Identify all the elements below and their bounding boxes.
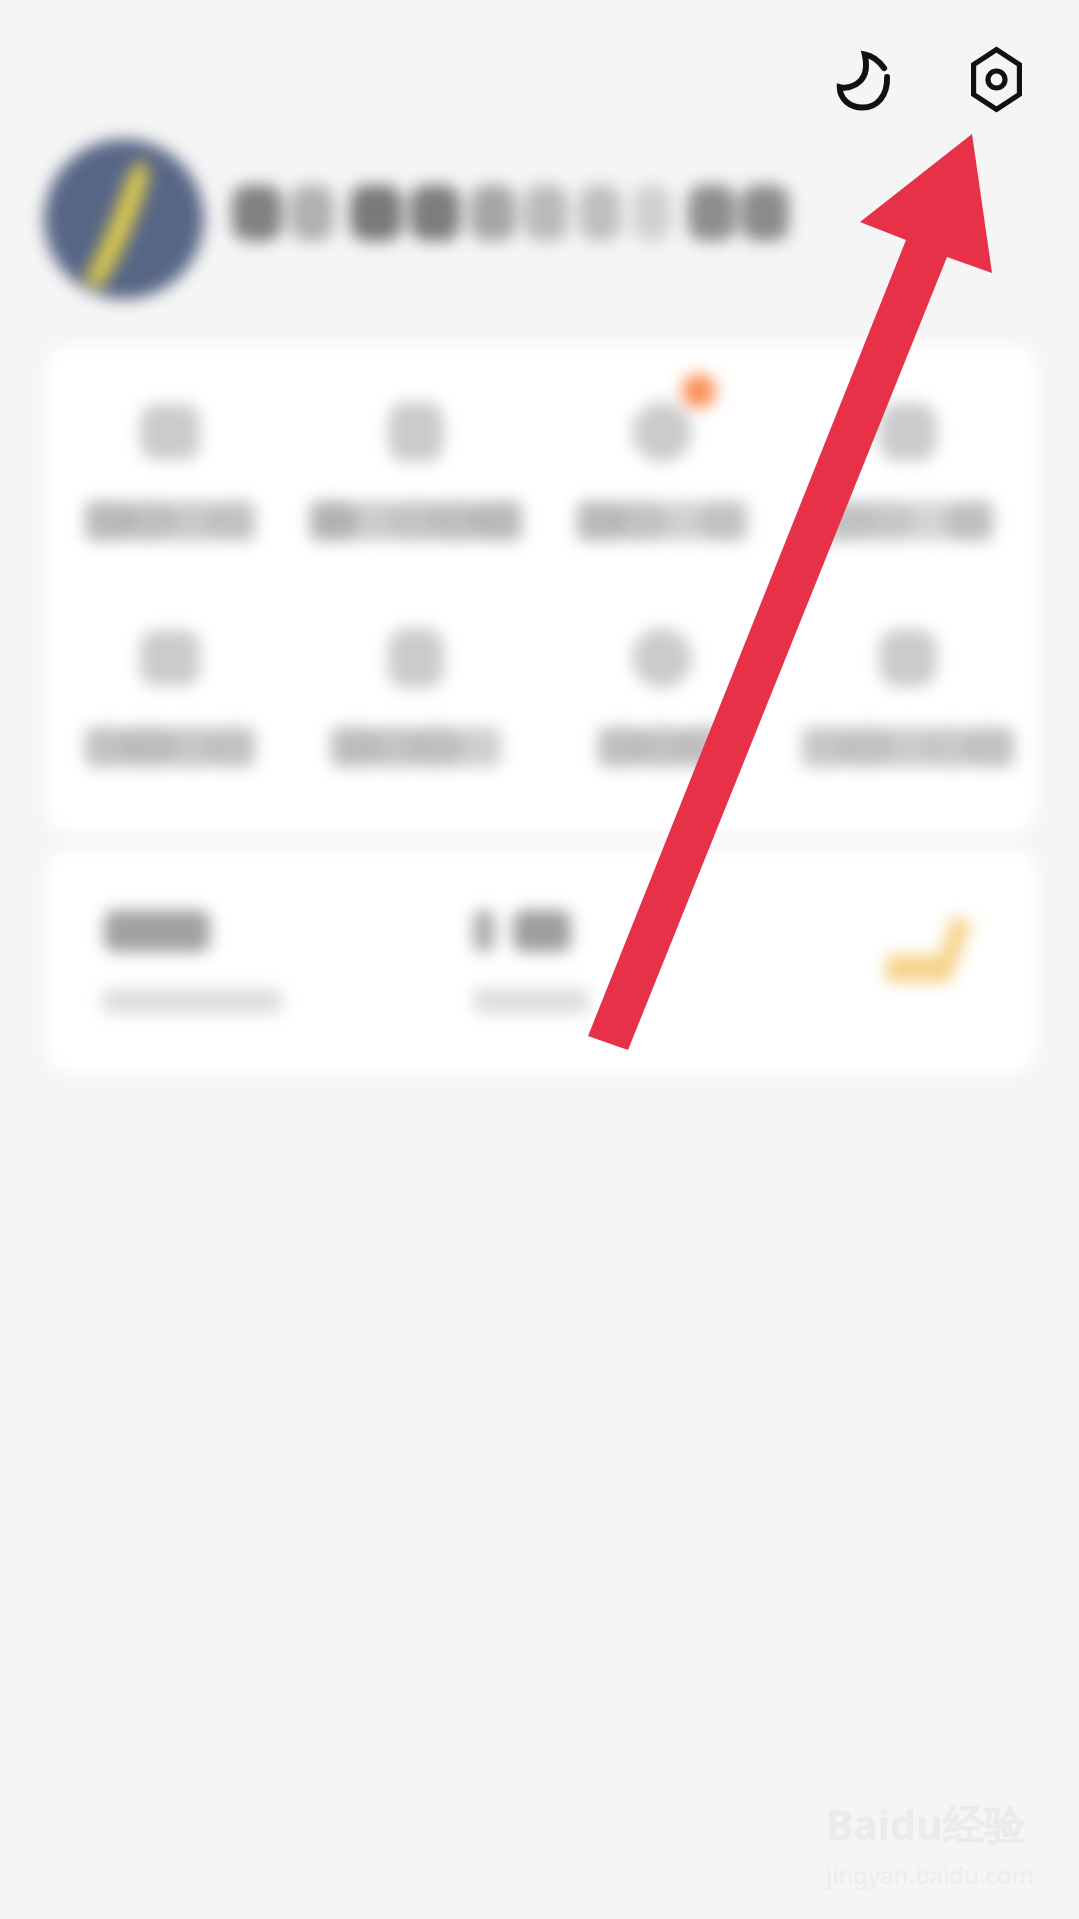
button[interactable]: Dark mode <box>833 49 897 113</box>
button[interactable]: Settings <box>965 48 1028 111</box>
staticText: Baidu经验 <box>826 1796 1025 1852</box>
